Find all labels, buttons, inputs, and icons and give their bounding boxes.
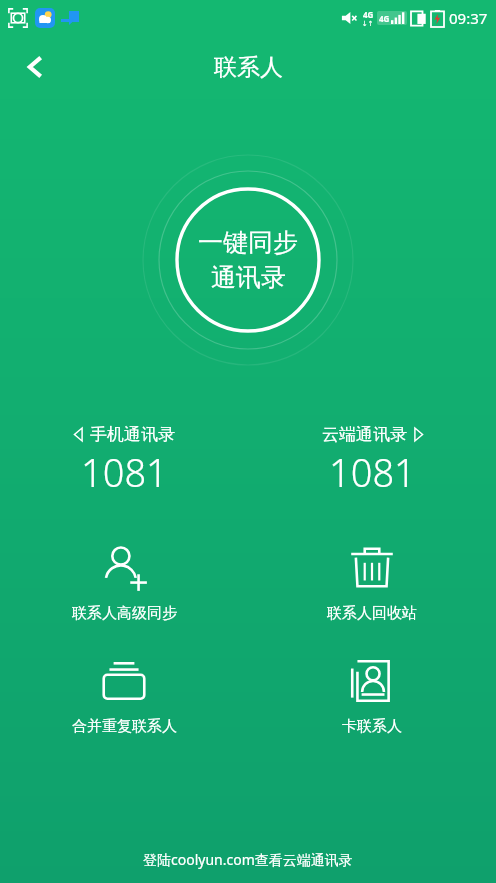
staticText: 4G	[379, 13, 390, 24]
button[interactable]: 卡联系人	[248, 651, 496, 740]
staticText: 1081	[329, 446, 416, 498]
button[interactable]: Back	[12, 43, 60, 91]
button[interactable]: 登陆coolyun.com查看云端通讯录	[143, 850, 353, 869]
staticText: 卡联系人	[342, 717, 402, 736]
button[interactable]: 一键同步	[142, 154, 354, 366]
staticText: ↓↑	[362, 20, 374, 28]
staticText: 联系人回收站	[327, 604, 417, 623]
button[interactable]: 手机通讯录	[0, 424, 248, 498]
staticText: 4G	[363, 9, 374, 20]
staticText: 09:37	[449, 8, 488, 28]
staticText: 联系人	[214, 53, 283, 82]
staticText: 云端通讯录	[322, 424, 407, 445]
button[interactable]: 联系人回收站	[248, 538, 496, 627]
staticText: 1081	[81, 446, 168, 498]
staticText: 合并重复联系人	[72, 717, 177, 736]
staticText: 手机通讯录	[90, 424, 175, 445]
button[interactable]: 联系人高级同步	[0, 538, 248, 627]
button[interactable]: 合并重复联系人	[0, 651, 248, 740]
staticText: 联系人高级同步	[72, 604, 177, 623]
button[interactable]: 云端通讯录	[248, 424, 496, 498]
staticText: 一键同步	[198, 227, 298, 258]
staticText: 通讯录	[211, 262, 286, 293]
